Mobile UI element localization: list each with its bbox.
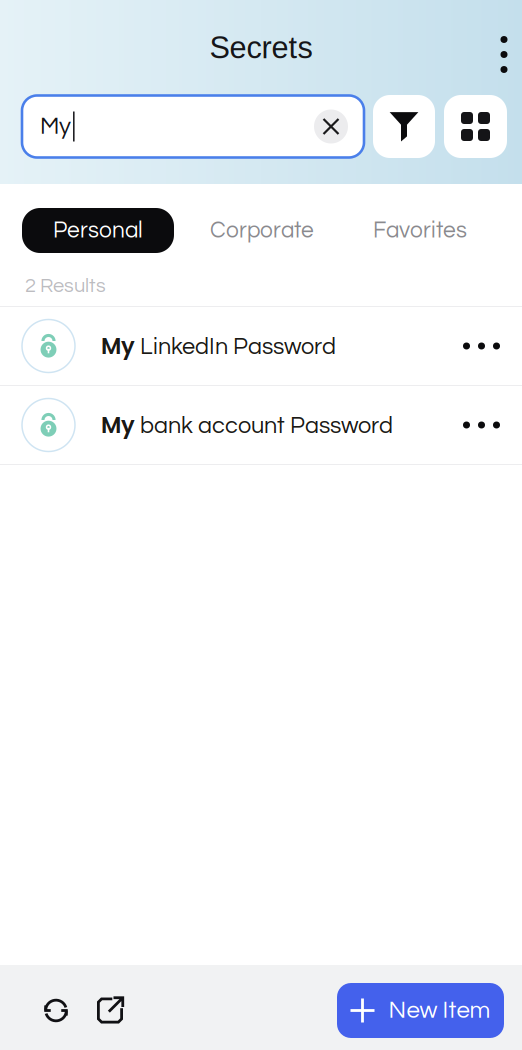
button[interactable]: More options [486, 0, 522, 95]
staticText: My LinkedIn Password [101, 330, 336, 361]
staticText: Personal [53, 219, 143, 242]
staticText: New Item [388, 998, 490, 1023]
button[interactable]: Personal [22, 208, 174, 253]
button[interactable]: New Item [337, 983, 504, 1038]
staticText: Secrets [209, 30, 312, 65]
button[interactable]: Filter [373, 95, 435, 158]
button[interactable]: My LinkedIn Password [0, 307, 522, 386]
button[interactable]: My bank account Password [0, 386, 522, 465]
staticText: Favorites [373, 219, 467, 242]
button[interactable]: Sync [33, 987, 79, 1033]
staticText: My [40, 114, 71, 139]
button[interactable]: Favorites [352, 208, 488, 253]
button[interactable]: Clear search [314, 109, 364, 143]
staticText: My bank account Password [101, 409, 393, 440]
button[interactable]: Grid view [444, 95, 507, 158]
staticText: Corporate [210, 219, 314, 242]
staticText: 2 Results [25, 276, 106, 296]
button[interactable]: Corporate [194, 208, 330, 253]
button[interactable]: Open external [87, 987, 133, 1033]
